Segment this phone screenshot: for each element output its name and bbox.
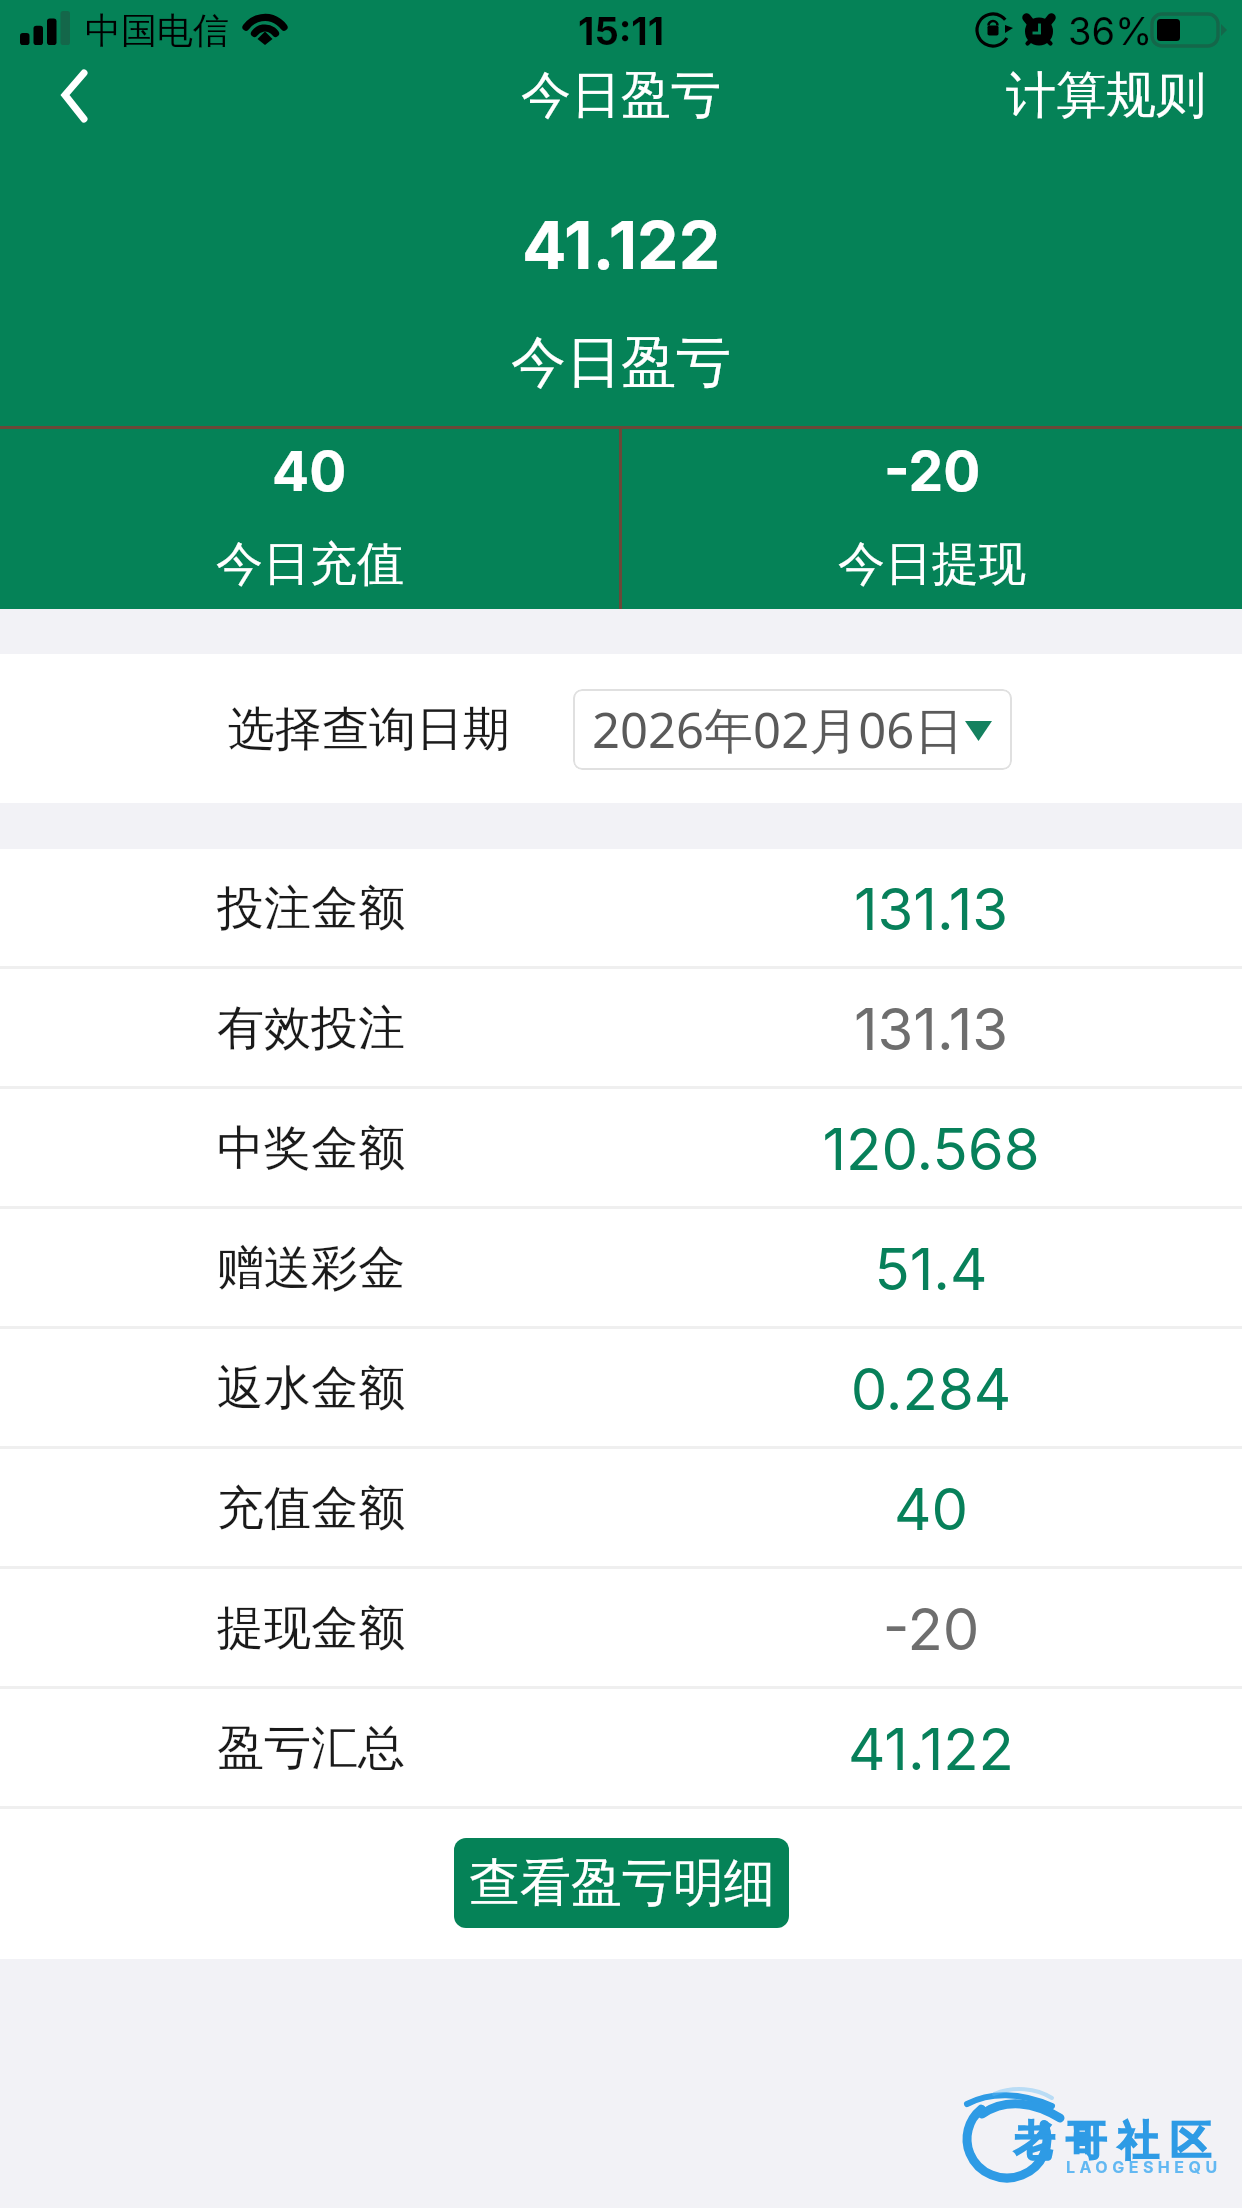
staticText: 充值金额 — [217, 1479, 405, 1538]
staticText: 15:11 — [578, 8, 665, 54]
staticText: 41.122 — [731, 1714, 1131, 1784]
staticText: 40 — [272, 438, 347, 505]
staticText: 计算规则 — [1006, 64, 1206, 127]
staticText: 赠送彩金 — [217, 1239, 405, 1298]
staticText: 2026年02月06日 — [592, 696, 964, 763]
staticText: 今日盈亏 — [521, 64, 721, 127]
staticText: 今日提现 — [838, 535, 1026, 594]
staticText: 今日盈亏 — [511, 328, 731, 397]
button[interactable]: 盈亏汇总 — [0, 1689, 1242, 1806]
button[interactable]: 投注金额 — [0, 849, 1242, 966]
button[interactable]: 查看盈亏明细 — [454, 1838, 789, 1928]
staticText: 有效投注 — [217, 999, 405, 1058]
staticText: 返水金额 — [217, 1359, 405, 1418]
staticText: 131.13 — [731, 994, 1131, 1064]
staticText: 选择查询日期 — [228, 700, 510, 759]
button[interactable]: 返水金额 — [0, 1329, 1242, 1446]
button[interactable]: -20 — [622, 429, 1242, 609]
staticText: 盈亏汇总 — [217, 1719, 405, 1778]
staticText: 老哥社区 — [1008, 2116, 1216, 2168]
staticText: 投注金额 — [217, 879, 405, 938]
staticText: 中国电信 — [85, 8, 229, 53]
staticText: 41.122 — [522, 205, 721, 285]
button[interactable]: 2026年02月06日 — [573, 689, 1012, 770]
staticText: -20 — [731, 1594, 1131, 1664]
button[interactable]: 计算规则 — [1006, 64, 1206, 127]
staticText: 0.284 — [731, 1354, 1131, 1424]
staticText: 40 — [731, 1474, 1131, 1544]
button[interactable]: 有效投注 — [0, 969, 1242, 1086]
staticText: 中奖金额 — [217, 1119, 405, 1178]
button[interactable]: Back — [0, 58, 120, 132]
staticText: -20 — [884, 438, 981, 505]
staticText: 提现金额 — [217, 1599, 405, 1658]
staticText: 51.4 — [731, 1234, 1131, 1304]
staticText: 131.13 — [731, 874, 1131, 944]
button[interactable]: 40 — [0, 429, 619, 609]
button[interactable]: 充值金额 — [0, 1449, 1242, 1566]
staticText: 今日充值 — [216, 535, 404, 594]
button[interactable]: 赠送彩金 — [0, 1209, 1242, 1326]
staticText: 36% — [1068, 8, 1153, 54]
staticText: 查看盈亏明细 — [469, 1851, 775, 1915]
staticText: LAOGESHEQU — [1066, 2157, 1222, 2176]
button[interactable]: 提现金额 — [0, 1569, 1242, 1686]
button[interactable]: 中奖金额 — [0, 1089, 1242, 1206]
staticText: 120.568 — [731, 1114, 1131, 1184]
